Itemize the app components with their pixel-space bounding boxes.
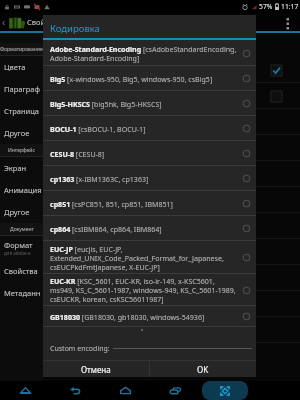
staticText: для adobe-e xyxy=(4,250,31,256)
button[interactable]: Метаданные xyxy=(0,282,43,304)
staticText: ‹ xyxy=(2,15,6,29)
staticText: GB18030 [GB18030, gb18030, windows-54936… xyxy=(50,312,205,322)
button[interactable]: OK xyxy=(150,361,256,377)
button[interactable]: cp1363 [x-IBM1363C, cp1363] xyxy=(43,166,256,191)
staticText: Кодировка xyxy=(50,22,100,35)
button[interactable]: Экран xyxy=(0,157,43,179)
staticText: Формат xyxy=(4,240,33,250)
button[interactable]: EUC-JP [eucjis, EUC-JP, Extended_UNIX_Co… xyxy=(43,241,256,274)
staticText: Интерфейс xyxy=(8,147,35,154)
button[interactable]: Страница xyxy=(0,100,43,122)
staticText: 11:17 xyxy=(281,2,299,11)
button[interactable]: Recent apps xyxy=(150,381,200,400)
staticText: 57% xyxy=(259,2,273,11)
button[interactable]: Анимация xyxy=(0,179,43,201)
button[interactable]: Full screen xyxy=(202,381,248,400)
button[interactable]: Свойства xyxy=(0,260,43,282)
button[interactable]: cp851 [csPC851, 851, cp851, IBM851] xyxy=(43,191,256,216)
button[interactable]: Цвета xyxy=(0,56,43,78)
staticText: Параграф xyxy=(4,84,40,94)
button[interactable]: BOCU-1 [csBOCU-1, BOCU-1] xyxy=(43,116,256,141)
staticText: Big5-HKSCS [big5hk, Big5-HKSCS] xyxy=(50,99,162,109)
staticText: Документ xyxy=(10,226,34,233)
button[interactable]: Другое xyxy=(0,201,43,223)
button[interactable]: Big5 [x-windows-950, Big5, windows-950, … xyxy=(43,66,256,91)
staticText: Свойства xyxy=(27,17,61,27)
button[interactable]: Back xyxy=(50,381,100,400)
staticText: Adobe-Standard-Encoding [csAdobeStandard… xyxy=(50,44,237,63)
button[interactable]: Home xyxy=(100,381,150,400)
staticText: BOCU-1 [csBOCU-1, BOCU-1] xyxy=(50,124,146,134)
staticText: cp1363 [x-IBM1363C, cp1363] xyxy=(50,174,149,184)
staticText: cp864 [csIBM864, cp864, IBM864] xyxy=(50,224,162,234)
button[interactable]: Navigate up xyxy=(0,381,50,400)
staticText: Custom encoding: xyxy=(50,344,110,354)
staticText: Метаданные xyxy=(4,288,43,298)
staticText: Анимация xyxy=(4,185,42,195)
button[interactable]: Формат xyxy=(0,236,43,260)
button[interactable]: cp864 [csIBM864, cp864, IBM864] xyxy=(43,216,256,241)
button[interactable]: GB18030 [GB18030, gb18030, windows-54936… xyxy=(43,306,256,327)
staticText: Свойства xyxy=(4,266,38,276)
staticText: EUC-KR [KSC_5601, EUC-KR, iso-ir-149, x-… xyxy=(50,276,237,304)
staticText: OK xyxy=(197,364,209,375)
button[interactable]: Big5-HKSCS [big5hk, Big5-HKSCS] xyxy=(43,91,256,116)
staticText: Экран xyxy=(4,163,27,173)
staticText: Другое xyxy=(4,207,30,217)
button[interactable]: Adobe-Standard-Encoding [csAdobeStandard… xyxy=(43,40,256,66)
button[interactable]: Параграф xyxy=(0,78,43,100)
staticText: Отмена xyxy=(81,364,111,375)
button[interactable]: EUC-KR [KSC_5601, EUC-KR, iso-ir-149, x-… xyxy=(43,274,256,306)
staticText: Страница xyxy=(4,106,40,116)
staticText: cp851 [csPC851, 851, cp851, IBM851] xyxy=(50,199,173,209)
staticText: Big5 [x-windows-950, Big5, windows-950, … xyxy=(50,74,213,84)
button[interactable]: More options xyxy=(278,13,296,31)
button[interactable]: Отмена xyxy=(43,361,149,377)
staticText: Другое xyxy=(4,128,30,138)
staticText: EUC-JP [eucjis, EUC-JP, Extended_UNIX_Co… xyxy=(50,244,237,272)
button[interactable]: CESU-8 [CESU-8] xyxy=(43,141,256,166)
staticText: Форматирование xyxy=(0,46,43,53)
staticText: CESU-8 [CESU-8] xyxy=(50,149,105,159)
staticText: Цвета xyxy=(4,62,26,72)
button[interactable]: Другое xyxy=(0,122,43,144)
